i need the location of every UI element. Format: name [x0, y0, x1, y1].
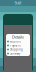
staticText: 9:41	[14, 0, 21, 6]
staticText: Shipping	[10, 48, 23, 51]
button[interactable]: Shipping	[6, 47, 30, 51]
button[interactable]: Payment	[6, 43, 30, 47]
button[interactable]: Summary	[6, 51, 30, 55]
button[interactable]: Account	[6, 39, 30, 43]
staticText: Payment	[10, 44, 21, 47]
staticText: Account	[10, 40, 21, 43]
staticText: Details	[12, 34, 24, 40]
staticText: Summary	[10, 52, 20, 55]
